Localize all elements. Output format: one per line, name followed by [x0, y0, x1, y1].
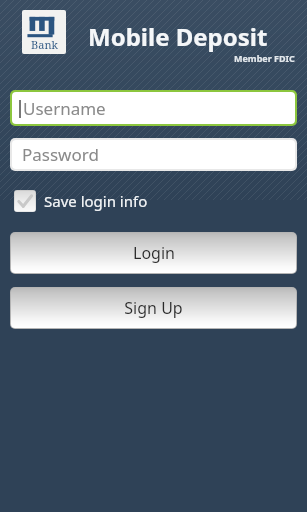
staticText: Password: [22, 143, 99, 166]
button[interactable]: Sign Up: [10, 287, 297, 329]
staticText: Bank: [31, 37, 58, 52]
staticText: Login: [133, 242, 175, 264]
button[interactable]: Login: [10, 232, 297, 274]
button[interactable]: Username: [10, 90, 297, 126]
button[interactable]: Password: [10, 138, 297, 171]
staticText: Username: [23, 97, 106, 120]
staticText: Mobile Deposit: [88, 20, 268, 53]
staticText: Sign Up: [124, 297, 183, 319]
button[interactable]: Save login info: [14, 188, 148, 214]
staticText: Save login info: [44, 191, 148, 211]
staticText: Member FDIC: [234, 52, 295, 64]
